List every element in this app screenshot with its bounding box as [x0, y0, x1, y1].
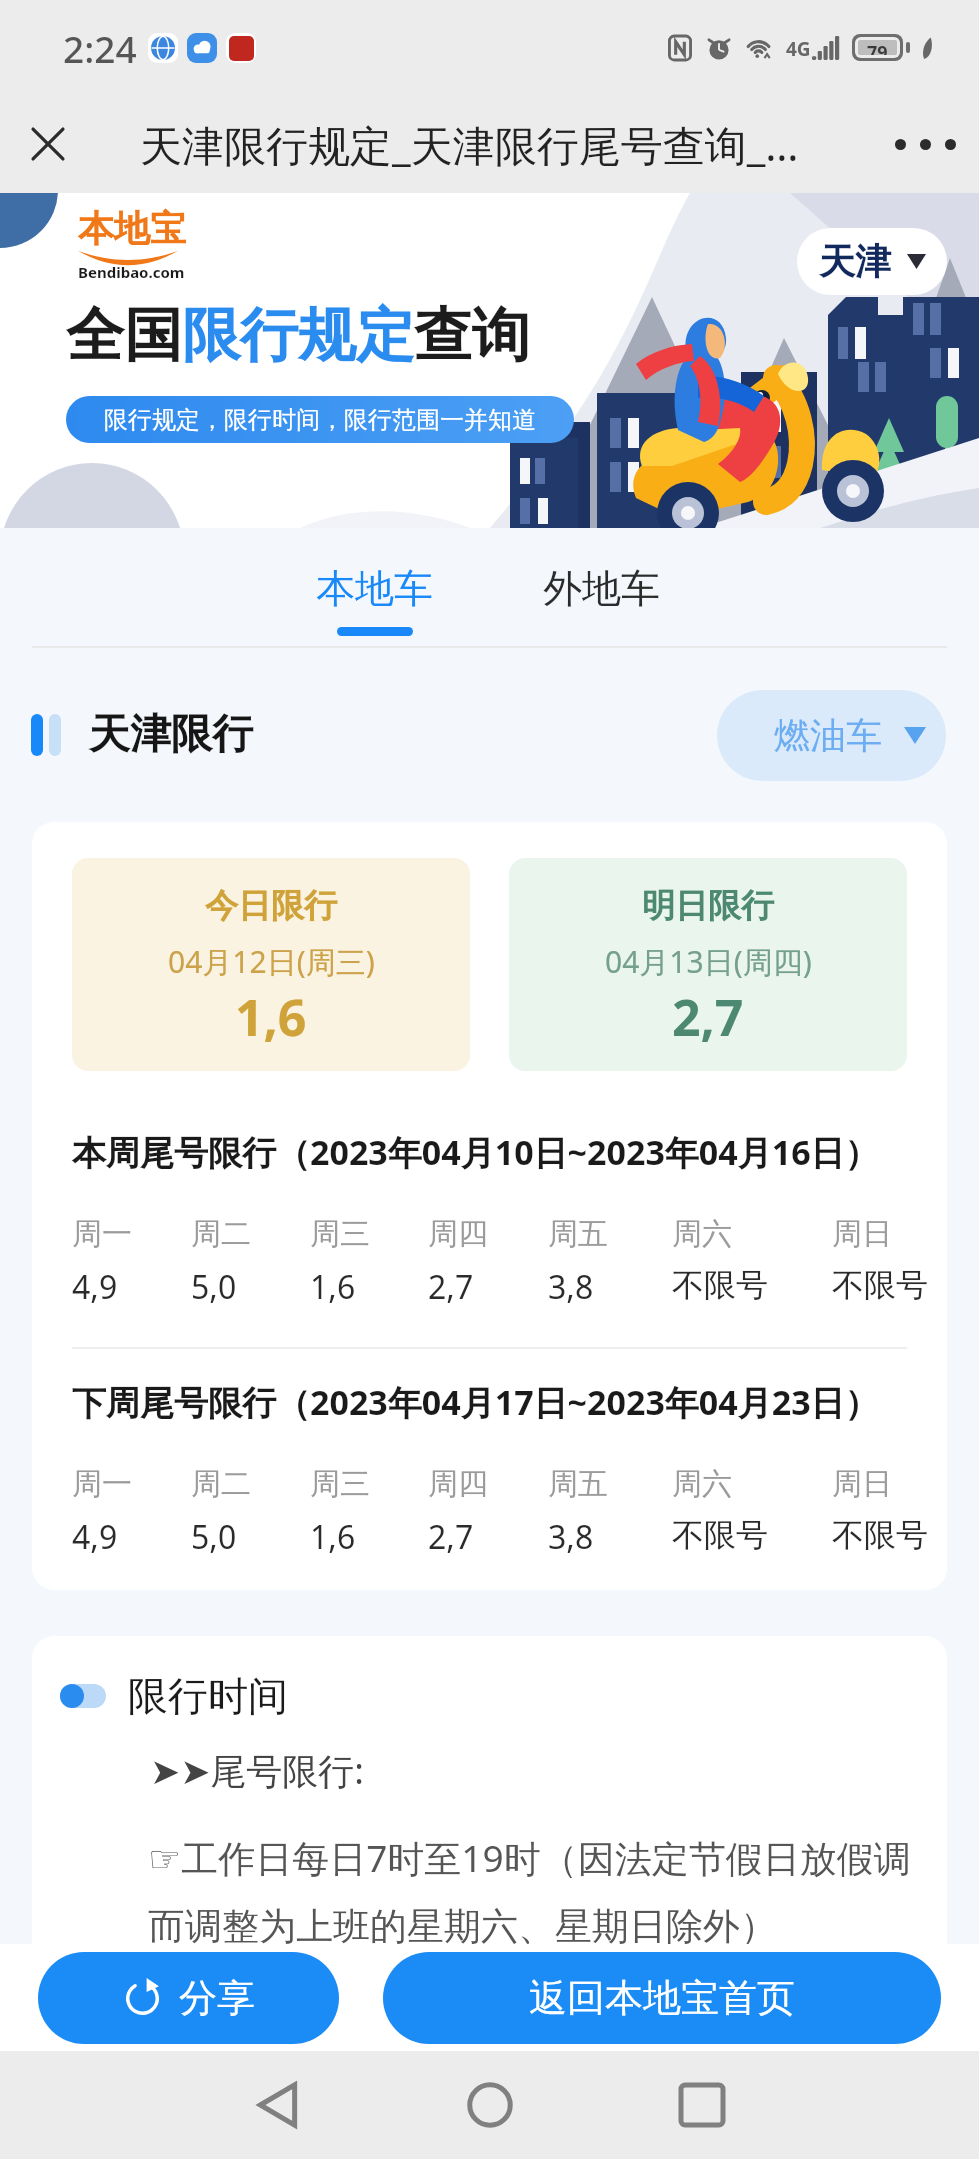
- staticText: 外地车: [543, 564, 660, 613]
- staticText: 周三: [310, 1465, 370, 1503]
- staticText: 2,7: [672, 983, 744, 1051]
- staticText: 3,8: [548, 1515, 594, 1559]
- staticText: 天津限行规定_天津限行尾号查询_…: [140, 116, 799, 173]
- staticText: 4,9: [72, 1265, 118, 1309]
- staticText: 3,8: [548, 1265, 594, 1309]
- staticText: ☞工作日每日7时至19时（因法定节假日放假调休: [148, 1832, 923, 1883]
- staticText: 2,7: [428, 1265, 474, 1309]
- staticText: 周一: [72, 1215, 132, 1253]
- button[interactable]: Home: [436, 2051, 544, 2159]
- staticText: 分享: [179, 1974, 255, 2022]
- staticText: 1,6: [310, 1515, 356, 1559]
- staticText: 1,6: [310, 1265, 356, 1309]
- staticText: 04月12日(周三): [168, 941, 375, 982]
- staticText: 1,6: [235, 983, 307, 1051]
- staticText: 周四: [428, 1465, 488, 1503]
- staticText: 周日: [832, 1215, 892, 1253]
- staticText: Bendibao.com: [78, 262, 185, 282]
- staticText: 今日限行: [205, 885, 337, 927]
- staticText: 周五: [548, 1465, 608, 1503]
- staticText: 周一: [72, 1465, 132, 1503]
- button[interactable]: 燃油车: [717, 690, 946, 781]
- staticText: 周三: [310, 1215, 370, 1253]
- staticText: 天津限行: [89, 709, 253, 761]
- staticText: 限行时间: [128, 1671, 288, 1721]
- staticText: 不限号: [672, 1515, 768, 1555]
- button[interactable]: 天津: [797, 228, 947, 295]
- staticText: 天津: [819, 239, 891, 284]
- staticText: 5,0: [191, 1265, 237, 1309]
- staticText: 5,0: [191, 1515, 237, 1559]
- staticText: 而调整为上班的星期六、星期日除外）: [148, 1903, 777, 1944]
- staticText: 周二: [191, 1215, 251, 1253]
- staticText: 限行规定: [182, 299, 414, 372]
- staticText: 周四: [428, 1215, 488, 1253]
- staticText: 本地车: [316, 564, 433, 613]
- staticText: 明日限行: [642, 885, 774, 927]
- staticText: 返回本地宝首页: [529, 1974, 795, 2022]
- staticText: 查询: [414, 299, 530, 372]
- staticText: 本地宝: [78, 206, 186, 251]
- staticText: 燃油车: [774, 713, 882, 758]
- staticText: 周六: [672, 1215, 732, 1253]
- staticText: 4,9: [72, 1515, 118, 1559]
- button[interactable]: More options: [871, 95, 979, 193]
- staticText: 周日: [832, 1465, 892, 1503]
- staticText: 79: [867, 40, 888, 55]
- staticText: 2,7: [428, 1515, 474, 1559]
- staticText: 2:24: [63, 23, 137, 73]
- staticText: ➤➤尾号限行:: [150, 1746, 364, 1795]
- staticText: 不限号: [672, 1265, 768, 1305]
- staticText: 不限号: [832, 1265, 928, 1305]
- staticText: 周二: [191, 1465, 251, 1503]
- button[interactable]: 本地车: [316, 528, 433, 636]
- button[interactable]: Back: [223, 2051, 331, 2159]
- button[interactable]: 分享: [38, 1952, 339, 2044]
- button[interactable]: Close: [0, 95, 96, 193]
- button[interactable]: 返回本地宝首页: [383, 1952, 941, 2044]
- button[interactable]: 外地车: [543, 528, 660, 613]
- staticText: 不限号: [832, 1515, 928, 1555]
- staticText: 限行规定，限行时间，限行范围一并知道: [104, 405, 536, 435]
- staticText: 周六: [672, 1465, 732, 1503]
- staticText: 全国: [66, 299, 182, 372]
- staticText: 本周尾号限行（2023年04月10日~2023年04月16日）: [72, 1129, 879, 1175]
- staticText: 04月13日(周四): [605, 941, 812, 982]
- staticText: 下周尾号限行（2023年04月17日~2023年04月23日）: [72, 1379, 879, 1425]
- button[interactable]: Recent apps: [648, 2051, 756, 2159]
- staticText: 4G: [786, 36, 811, 60]
- staticText: 周五: [548, 1215, 608, 1253]
